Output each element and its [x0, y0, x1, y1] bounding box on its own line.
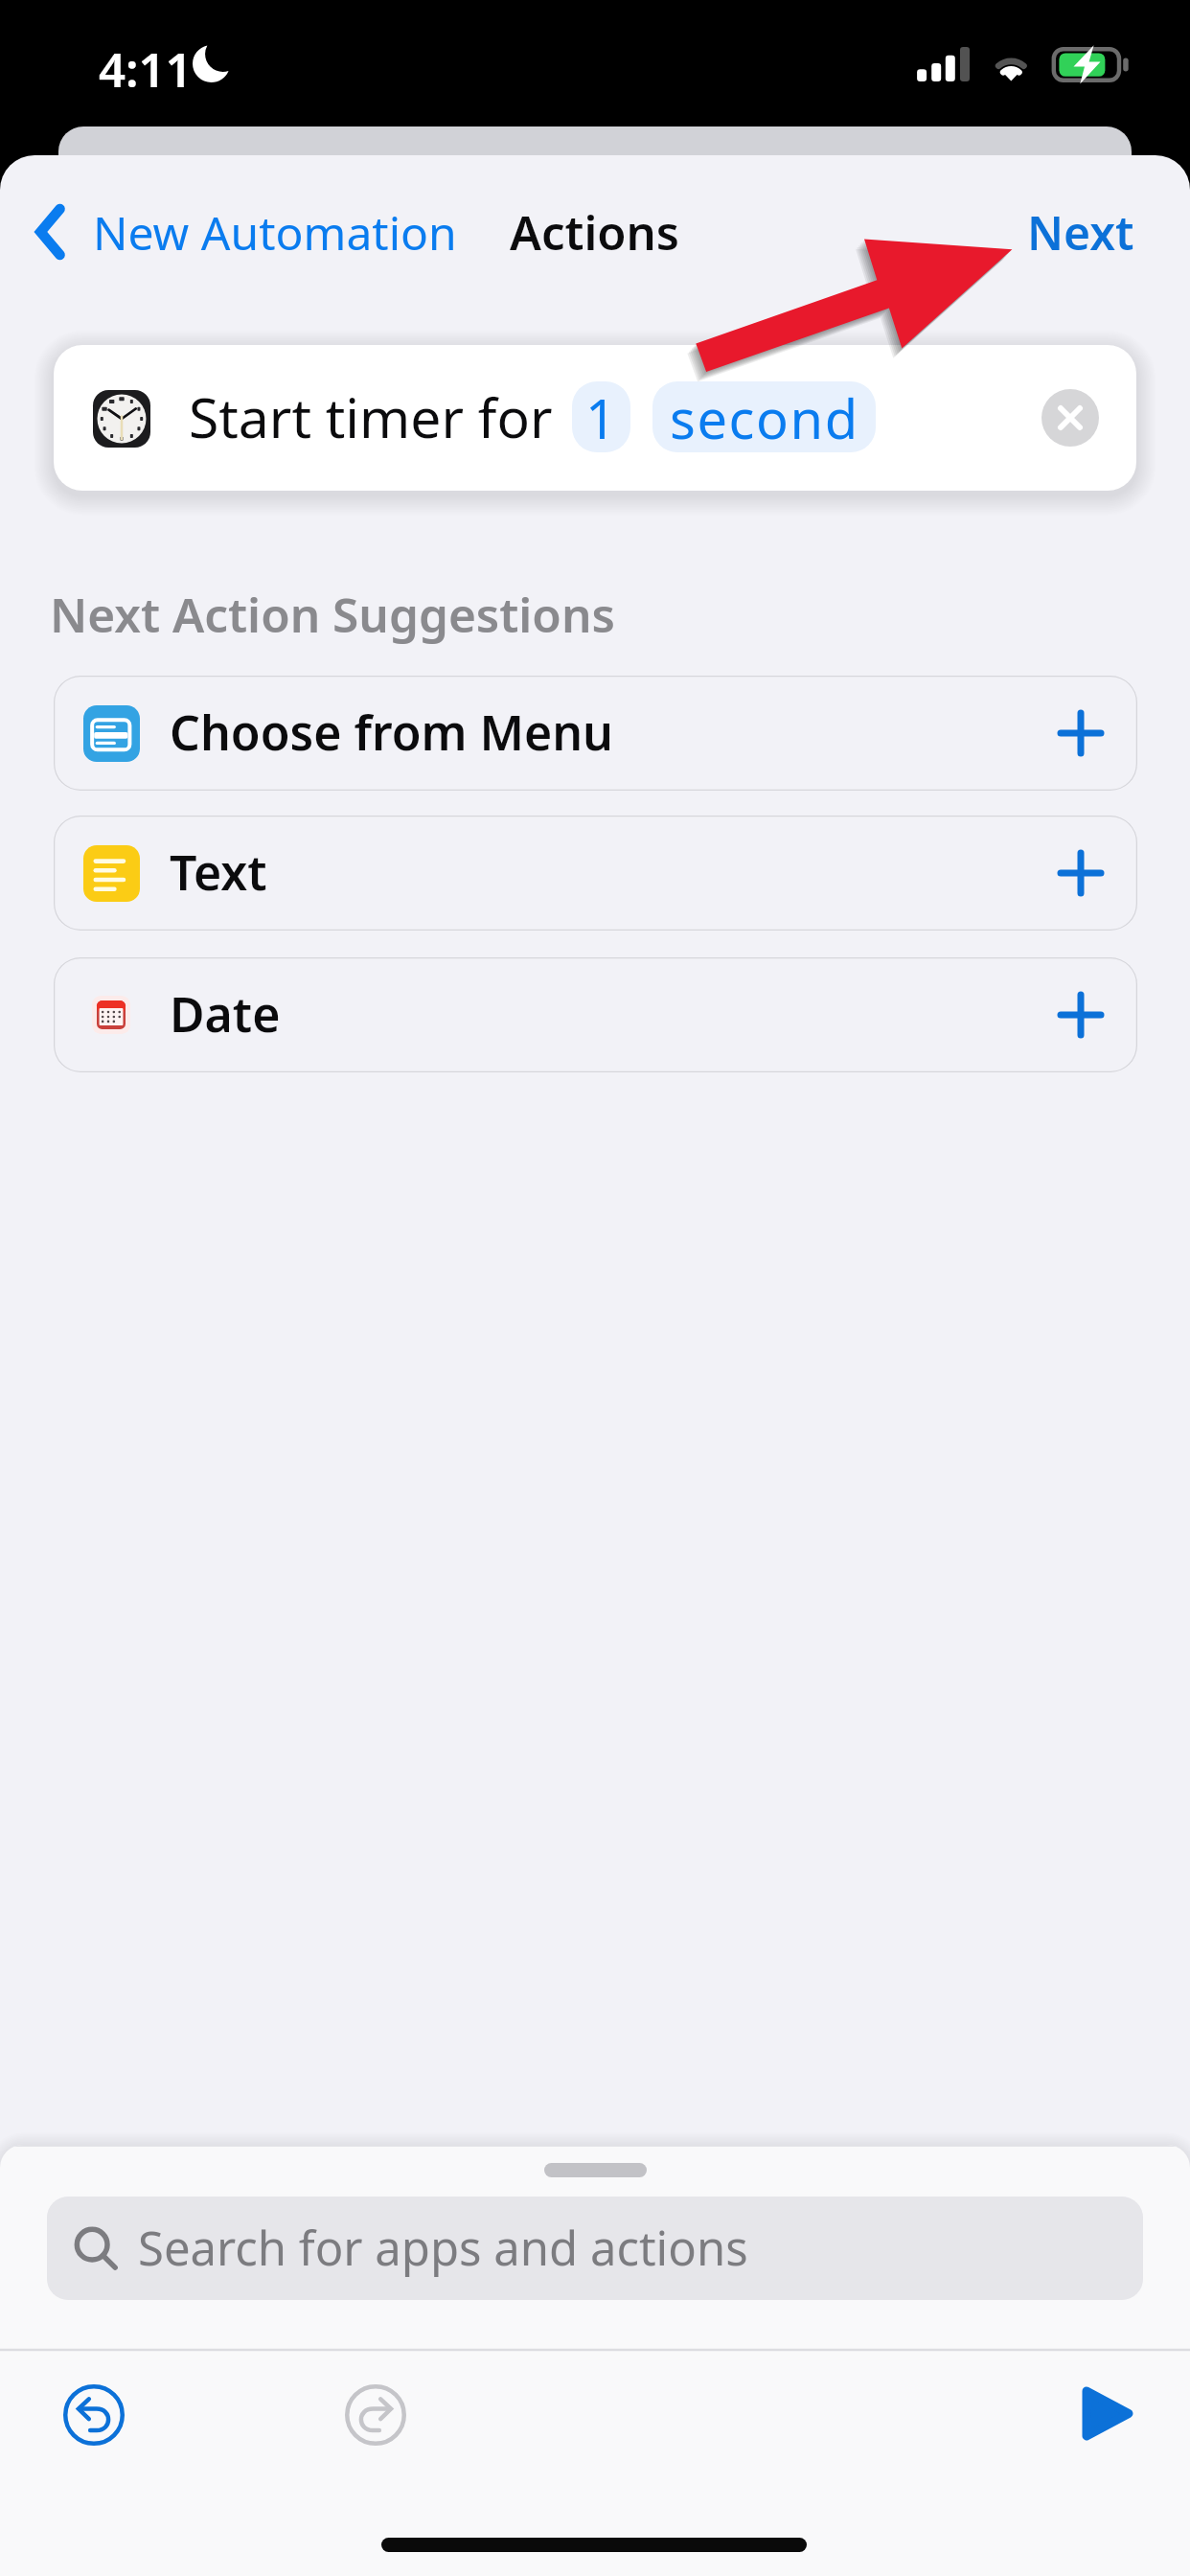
button[interactable]: Next	[1018, 188, 1143, 276]
button[interactable]: Undo	[63, 2384, 125, 2446]
staticText: Actions	[510, 200, 679, 264]
button[interactable]: Date	[54, 957, 1137, 1072]
button[interactable]: Choose from Menu	[54, 676, 1137, 791]
button[interactable]: New Automation	[29, 188, 457, 276]
staticText: Date	[170, 981, 281, 1046]
staticText: Choose from Menu	[170, 700, 613, 765]
button[interactable]: Remove action	[1041, 389, 1099, 447]
staticText: New Automation	[93, 201, 457, 264]
staticText: 1	[585, 381, 617, 452]
button[interactable]: Search for apps and actions	[47, 2196, 1143, 2300]
staticText: second	[670, 381, 859, 452]
staticText: Start timer for	[189, 379, 553, 454]
staticText: Next	[1027, 201, 1134, 264]
staticText: 4:11	[99, 37, 193, 102]
button[interactable]: second	[652, 381, 876, 452]
staticText: Next Action Suggestions	[50, 582, 615, 646]
button[interactable]: Text	[54, 816, 1137, 931]
button[interactable]: Run shortcut	[1081, 2385, 1134, 2442]
button[interactable]: Redo	[345, 2384, 406, 2446]
staticText: Text	[170, 839, 267, 905]
button[interactable]: 1	[572, 381, 630, 452]
staticText: Search for apps and actions	[138, 2216, 748, 2280]
button[interactable]: Start timer for	[54, 345, 1136, 491]
